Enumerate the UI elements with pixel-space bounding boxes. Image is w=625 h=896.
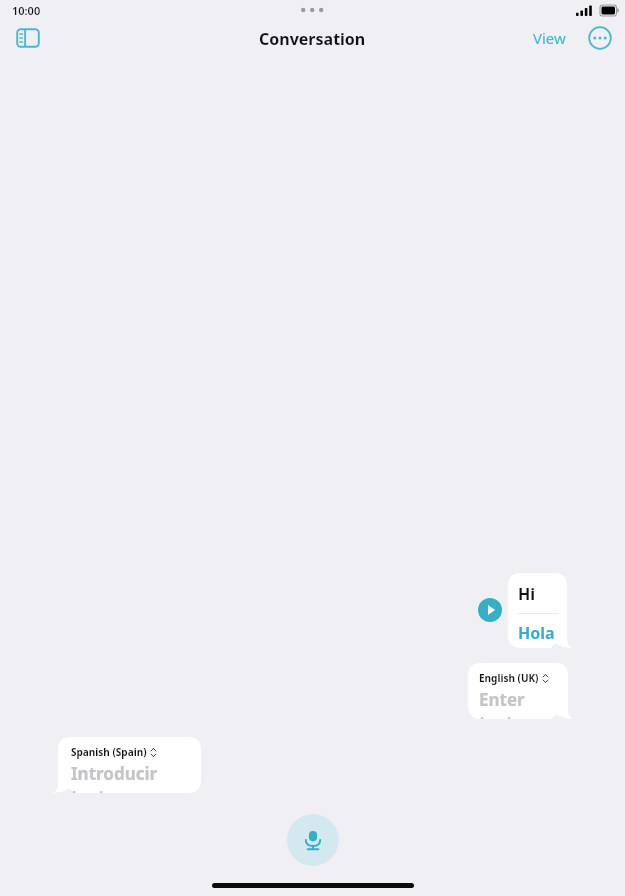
staticText: View <box>533 28 566 48</box>
staticText: Introducir texto <box>71 762 193 793</box>
staticText: Spanish (Spain) <box>71 745 147 759</box>
button[interactable]: Play translation <box>477 597 503 623</box>
button[interactable]: Show sidebar <box>8 24 48 52</box>
staticText: Hola <box>518 622 555 644</box>
staticText: 10:00 <box>12 3 41 18</box>
button[interactable]: Hi <box>508 573 567 648</box>
button[interactable]: More options <box>585 23 615 53</box>
button[interactable]: Spanish (Spain) <box>58 737 201 793</box>
staticText: English (UK) <box>479 671 539 685</box>
button[interactable]: Record speech <box>287 814 339 866</box>
button[interactable]: English (UK) <box>468 663 568 719</box>
staticText: Hi <box>518 583 536 605</box>
button[interactable]: View <box>533 24 566 52</box>
staticText: Conversation <box>259 28 366 50</box>
staticText: Enter text <box>479 688 560 719</box>
